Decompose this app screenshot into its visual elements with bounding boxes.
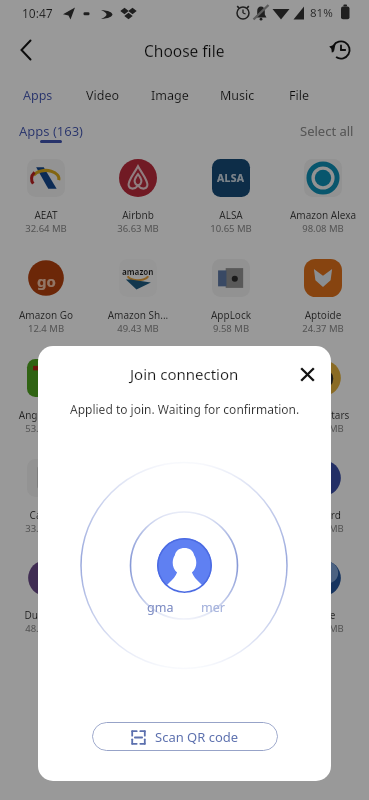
button[interactable]: Close: [292, 359, 322, 389]
staticText: Colorful: [189, 508, 273, 522]
staticText: Scan QR code: [155, 728, 239, 746]
staticText: 29.10 MB: [185, 522, 277, 535]
staticText: Music: [220, 87, 255, 104]
staticText: Amazon Alexa: [281, 208, 365, 222]
staticText: Apps: [23, 87, 53, 104]
staticText: gma: [147, 599, 174, 616]
button[interactable]: Image: [144, 81, 196, 109]
staticText: AppLock: [189, 308, 273, 322]
staticText: ALSA: [217, 171, 245, 185]
staticText: 53.14 MB: [0, 422, 92, 435]
staticText: Video: [86, 87, 120, 104]
staticText: AEAT: [4, 208, 88, 222]
button[interactable]: Music: [211, 81, 263, 109]
staticText: go: [37, 271, 56, 291]
staticText: 10:47: [22, 5, 53, 21]
button[interactable]: AEAT: [0, 150, 92, 250]
staticText: Discord: [281, 508, 365, 522]
button[interactable]: Apps (163): [13, 118, 89, 144]
staticText: Brawl Stars: [281, 408, 365, 422]
staticText: ALSA: [189, 208, 273, 222]
staticText: Authentic...: [96, 408, 180, 422]
button[interactable]: Angry Birds: [0, 350, 92, 450]
staticText: Angry Birds: [4, 408, 88, 422]
staticText: Airbnb: [96, 208, 180, 222]
button[interactable]: Drive: [277, 550, 369, 650]
staticText: 33.04 MB: [0, 522, 92, 535]
button[interactable]: Discord: [277, 450, 369, 550]
button[interactable]: Back: [10, 34, 42, 66]
staticText: Drive: [281, 608, 365, 622]
button[interactable]: Duolingo: [0, 550, 92, 650]
staticText: mer: [201, 599, 225, 616]
staticText: 88.81 MB: [277, 622, 369, 635]
staticText: Join connection: [130, 364, 239, 384]
staticText: Amazon Go: [4, 308, 88, 322]
staticText: Dot: [189, 608, 273, 622]
staticText: 9.58 MB: [185, 322, 277, 335]
button[interactable]: Clash Royale: [92, 450, 184, 550]
staticText: Duolingo: [4, 608, 88, 622]
button[interactable]: amazon: [92, 250, 184, 350]
button[interactable]: go: [0, 250, 92, 350]
button[interactable]: Apps: [12, 81, 64, 109]
staticText: 24.37 MB: [277, 322, 369, 335]
button[interactable]: Authentic...: [92, 350, 184, 450]
staticText: 98.08 MB: [277, 222, 369, 235]
button[interactable]: Airbnb: [92, 150, 184, 250]
button[interactable]: Dropbox: [92, 550, 184, 650]
staticText: 81%: [310, 5, 333, 21]
staticText: Select all: [300, 122, 354, 140]
staticText: Behance: [189, 408, 273, 422]
staticText: Image: [151, 87, 189, 104]
staticText: 120.8 MB: [92, 522, 184, 535]
staticText: 180.5 MB: [277, 422, 369, 435]
button[interactable]: Behance: [185, 350, 277, 450]
button[interactable]: Select all: [300, 118, 354, 144]
staticText: Calibre: [4, 508, 88, 522]
button[interactable]: Aptoide: [277, 250, 369, 350]
staticText: 32.64 MB: [0, 222, 92, 235]
staticText: Dropbox: [96, 608, 180, 622]
staticText: 99.54 MB: [277, 522, 369, 535]
staticText: Clash Royale: [96, 508, 180, 522]
staticText: 60.23 MB: [92, 622, 184, 635]
button[interactable]: History: [325, 34, 357, 66]
staticText: Amazon Sh...: [96, 308, 180, 322]
staticText: File: [289, 87, 309, 104]
staticText: 12.4 MB: [0, 322, 92, 335]
staticText: Applied to join. Waiting for confirmatio…: [70, 401, 300, 417]
button[interactable]: Brawl Stars: [277, 350, 369, 450]
staticText: 49.43 MB: [92, 322, 184, 335]
staticText: 48.06 MB: [0, 622, 92, 635]
staticText: Choose file: [144, 40, 225, 61]
staticText: 10.65 MB: [185, 222, 277, 235]
button[interactable]: Calibre: [0, 450, 92, 550]
button[interactable]: File: [273, 81, 325, 109]
staticText: 21.08 MB: [185, 622, 277, 635]
staticText: Apps (163): [19, 122, 84, 140]
staticText: amazon: [122, 266, 154, 277]
button[interactable]: Scan QR code: [92, 722, 278, 751]
button[interactable]: Dot: [185, 550, 277, 650]
button[interactable]: Video: [77, 81, 129, 109]
staticText: Aptoide: [281, 308, 365, 322]
button[interactable]: Amazon Alexa: [277, 150, 369, 250]
staticText: 36.63 MB: [92, 222, 184, 235]
button[interactable]: Colorful: [185, 450, 277, 550]
button[interactable]: AppLock: [185, 250, 277, 350]
button[interactable]: ALSA: [185, 150, 277, 250]
